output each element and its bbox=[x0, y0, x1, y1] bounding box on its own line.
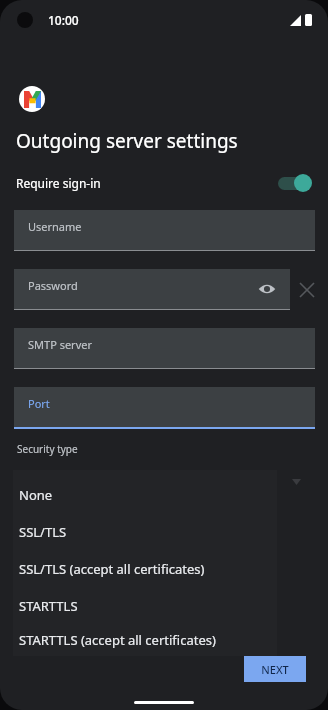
button[interactable]: SMTP server bbox=[14, 328, 315, 368]
button[interactable]: SSL/TLS bbox=[13, 513, 277, 550]
button[interactable]: STARTTLS (accept all certificates) bbox=[13, 624, 277, 656]
staticText: Username bbox=[28, 219, 82, 234]
button[interactable]: Require sign-in bbox=[0, 168, 328, 198]
staticText: SSL/TLS bbox=[19, 523, 67, 541]
button[interactable]: Password bbox=[14, 269, 290, 309]
button[interactable]: Username bbox=[14, 210, 315, 250]
staticText: Port bbox=[28, 396, 50, 411]
staticText: Require sign-in bbox=[16, 175, 101, 191]
button[interactable]: NEXT bbox=[244, 656, 306, 682]
staticText: Security type bbox=[17, 442, 78, 456]
staticText: STARTTLS (accept all certificates) bbox=[19, 631, 216, 649]
staticText: NEXT bbox=[261, 662, 289, 677]
button[interactable]: Show password bbox=[256, 278, 278, 300]
button[interactable]: SSL/TLS (accept all certificates) bbox=[13, 550, 277, 587]
button[interactable]: Open security type list bbox=[288, 474, 304, 490]
button[interactable]: Clear bbox=[296, 279, 318, 301]
staticText: SSL/TLS (accept all certificates) bbox=[19, 560, 205, 578]
staticText: Password bbox=[28, 278, 78, 293]
button[interactable]: STARTTLS bbox=[13, 587, 277, 624]
staticText: 10:00 bbox=[48, 12, 79, 28]
button[interactable]: Port bbox=[14, 387, 315, 427]
staticText: STARTTLS bbox=[19, 597, 78, 615]
button[interactable]: None bbox=[13, 476, 277, 513]
staticText: Outgoing server settings bbox=[16, 128, 238, 154]
staticText: SMTP server bbox=[28, 337, 92, 352]
staticText: None bbox=[19, 486, 53, 504]
